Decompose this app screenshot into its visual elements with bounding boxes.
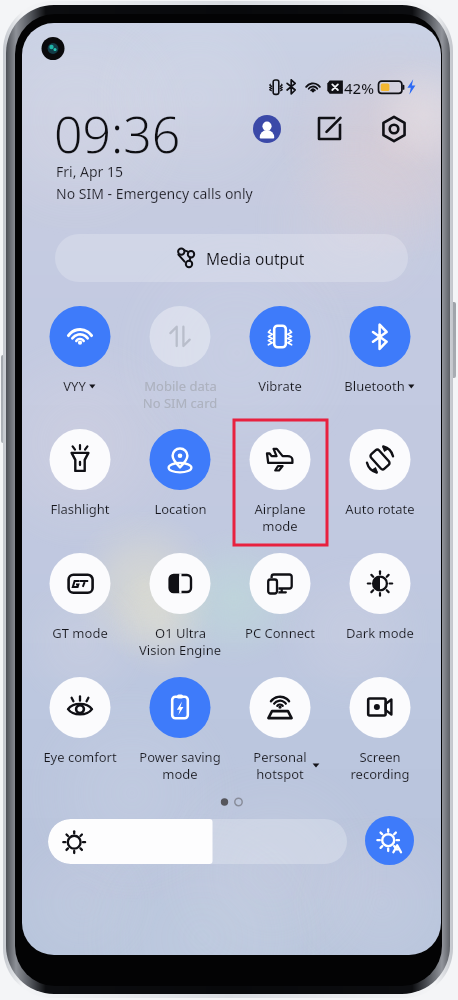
button[interactable]: Eye comfort <box>34 673 126 778</box>
button[interactable]: Mobile data <box>134 302 226 407</box>
staticText: Mobile data <box>144 377 217 394</box>
button[interactable]: PC Connect <box>234 549 326 654</box>
button[interactable]: Auto brightness <box>365 816 414 865</box>
staticText: hotspot <box>234 765 326 782</box>
staticText: Airplane <box>254 500 306 517</box>
staticText: VYY <box>63 377 86 394</box>
button[interactable]: Power saving <box>134 673 226 778</box>
button[interactable]: GT mode <box>34 549 126 654</box>
button[interactable]: Flashlight <box>34 425 126 530</box>
button[interactable]: Dark mode <box>334 549 426 654</box>
staticText: Bluetooth <box>344 377 405 394</box>
staticText: Vibrate <box>258 377 302 394</box>
button[interactable]: Bluetooth <box>334 302 426 407</box>
staticText: Vision Engine <box>134 641 226 658</box>
staticText: mode <box>234 517 326 534</box>
staticText: Auto rotate <box>345 500 415 517</box>
staticText: No SIM card <box>134 394 226 411</box>
button[interactable]: Auto rotate <box>334 425 426 530</box>
button[interactable]: VYY <box>34 302 126 407</box>
button[interactable]: Brightness <box>48 819 347 864</box>
staticText: Fri, Apr 15 <box>56 162 124 181</box>
staticText: O1 Ultra <box>155 624 206 641</box>
staticText: Power saving <box>139 748 221 765</box>
staticText: 09:36 <box>54 100 181 168</box>
button[interactable]: Screen <box>334 673 426 778</box>
staticText: PC Connect <box>245 624 315 641</box>
staticText: Dark mode <box>346 624 414 641</box>
button[interactable]: Vibrate <box>234 302 326 407</box>
staticText: Media output <box>206 248 305 269</box>
staticText: Flashlight <box>50 500 110 517</box>
staticText: No SIM - Emergency calls only <box>56 184 253 203</box>
button[interactable]: Settings <box>377 112 411 146</box>
staticText: 42% <box>344 78 374 98</box>
button[interactable]: User profile <box>253 115 281 143</box>
button[interactable]: O1 Ultra <box>134 549 226 654</box>
button[interactable]: Location <box>134 425 226 530</box>
staticText: Eye comfort <box>43 748 117 765</box>
button[interactable]: Edit <box>314 113 346 145</box>
staticText: GT mode <box>52 624 108 641</box>
staticText: Location <box>154 500 207 517</box>
staticText: Personal <box>253 748 307 765</box>
button[interactable]: Airplane <box>234 425 326 530</box>
staticText: Screen <box>359 748 401 765</box>
button[interactable]: Media output <box>55 234 408 282</box>
staticText: mode <box>134 765 226 782</box>
button[interactable]: Personal <box>234 673 326 778</box>
staticText: recording <box>334 765 426 782</box>
